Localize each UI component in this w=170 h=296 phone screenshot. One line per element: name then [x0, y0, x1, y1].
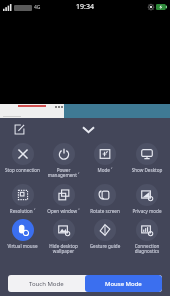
button[interactable]: Show Desktop	[126, 140, 168, 175]
staticText: Stop connection	[2, 167, 43, 173]
button[interactable]: Virtual mouse	[2, 216, 43, 251]
button[interactable]: Hide desktop wallpaper	[43, 216, 84, 257]
staticText: Hide desktop wallpaper	[43, 243, 84, 255]
button[interactable]: Power management ˅	[43, 140, 84, 181]
button[interactable]: Collapse panel	[77, 120, 99, 138]
staticText: Show Desktop	[126, 167, 168, 173]
staticText: Privacy mode	[126, 208, 168, 214]
button[interactable]: Mouse Mode	[85, 275, 162, 292]
button[interactable]: Connection diagnostics	[126, 216, 168, 257]
staticText: Mode ˅	[84, 167, 126, 173]
button[interactable]: Mode ˅	[84, 140, 126, 175]
button[interactable]: Stop connection	[2, 140, 43, 175]
button[interactable]: Touch Mode	[8, 275, 85, 292]
button[interactable]: Privacy mode	[126, 181, 168, 216]
staticText: Power management ˅	[43, 167, 84, 179]
staticText: Resolution ˅	[2, 208, 43, 214]
staticText: Virtual mouse	[2, 243, 43, 249]
button[interactable]: Edit shortcuts	[10, 120, 28, 138]
staticText: Gesture guide	[84, 243, 126, 249]
staticText: Mouse Mode	[105, 280, 142, 288]
button[interactable]: Open window ˅	[43, 181, 84, 216]
staticText: 19:34	[76, 2, 94, 12]
button[interactable]: Rotate screen	[84, 181, 126, 216]
staticText: Touch Mode	[29, 280, 64, 288]
staticText: Open window ˅	[43, 208, 84, 214]
button[interactable]: Resolution ˅	[2, 181, 43, 216]
staticText: Connection diagnostics	[126, 243, 168, 255]
button[interactable]: Gesture guide	[84, 216, 126, 251]
staticText: 4G	[34, 4, 41, 11]
staticText: Rotate screen	[84, 208, 126, 214]
